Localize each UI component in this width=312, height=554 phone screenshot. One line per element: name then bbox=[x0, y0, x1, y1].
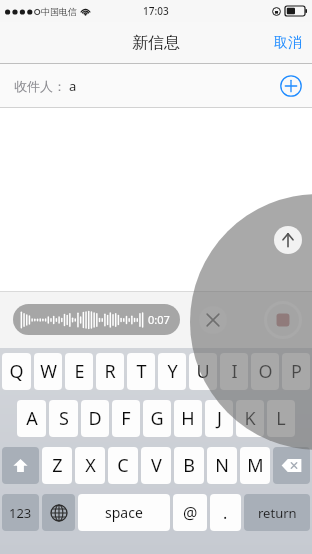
button[interactable]: Z bbox=[42, 447, 72, 484]
button[interactable]: space bbox=[78, 494, 170, 531]
button[interactable]: R bbox=[96, 353, 124, 390]
button[interactable]: Switch keyboard bbox=[42, 494, 75, 531]
button[interactable]: E bbox=[65, 353, 93, 390]
staticText: K bbox=[244, 406, 256, 431]
staticText: B bbox=[183, 453, 195, 478]
staticText: W bbox=[40, 359, 57, 384]
staticText: H bbox=[181, 406, 195, 431]
staticText: Q bbox=[9, 359, 24, 384]
staticText: C bbox=[117, 453, 129, 478]
button[interactable]: 0:07 bbox=[13, 304, 180, 335]
button[interactable]: G bbox=[143, 400, 171, 437]
staticText: @ bbox=[183, 502, 198, 524]
button[interactable]: D bbox=[81, 400, 109, 437]
staticText: X bbox=[85, 453, 96, 478]
staticText: I bbox=[231, 359, 238, 384]
staticText: G bbox=[150, 406, 164, 431]
button[interactable]: Stop recording bbox=[264, 301, 302, 339]
button[interactable]: Send bbox=[274, 226, 302, 254]
button[interactable]: . bbox=[210, 494, 241, 531]
staticText: E bbox=[74, 359, 85, 384]
button[interactable]: Q bbox=[2, 353, 31, 390]
button[interactable]: S bbox=[49, 400, 78, 437]
staticText: . bbox=[223, 502, 228, 524]
staticText: Z bbox=[52, 453, 63, 478]
button[interactable]: U bbox=[189, 353, 217, 390]
button[interactable]: C bbox=[108, 447, 138, 484]
button[interactable]: F bbox=[112, 400, 140, 437]
staticText: 17:03 bbox=[143, 4, 169, 18]
staticText: L bbox=[276, 406, 286, 431]
staticText: return bbox=[258, 504, 297, 522]
staticText: 收件人： bbox=[14, 78, 66, 94]
staticText: V bbox=[151, 453, 162, 478]
staticText: 取消 bbox=[274, 34, 302, 52]
staticText: N bbox=[215, 453, 229, 478]
button[interactable]: O bbox=[251, 353, 279, 390]
button[interactable]: Backspace bbox=[273, 447, 310, 484]
button[interactable]: I bbox=[220, 353, 248, 390]
staticText: 0:07 bbox=[148, 312, 170, 327]
staticText: F bbox=[121, 406, 131, 431]
button[interactable]: B bbox=[174, 447, 204, 484]
button[interactable]: J bbox=[205, 400, 233, 437]
button[interactable]: Y bbox=[158, 353, 186, 390]
button[interactable]: T bbox=[127, 353, 155, 390]
button[interactable]: Cancel recording bbox=[199, 306, 227, 334]
button[interactable]: K bbox=[236, 400, 264, 437]
staticText: a bbox=[69, 77, 77, 95]
staticText: R bbox=[104, 359, 116, 384]
button[interactable]: A bbox=[17, 400, 46, 437]
button[interactable]: Shift bbox=[2, 447, 39, 484]
staticText: S bbox=[59, 406, 69, 431]
staticText: T bbox=[136, 359, 147, 384]
staticText: P bbox=[291, 359, 302, 384]
button[interactable]: Add contact bbox=[280, 75, 302, 97]
button[interactable]: L bbox=[267, 400, 295, 437]
button[interactable]: return bbox=[244, 494, 310, 531]
button[interactable]: H bbox=[174, 400, 202, 437]
button[interactable]: 123 bbox=[2, 494, 39, 531]
staticText: O bbox=[258, 359, 273, 384]
staticText: A bbox=[26, 406, 38, 431]
staticText: Y bbox=[167, 359, 178, 384]
staticText: D bbox=[88, 406, 102, 431]
staticText: U bbox=[196, 359, 210, 384]
staticText: J bbox=[217, 406, 222, 431]
button[interactable]: N bbox=[207, 447, 237, 484]
staticText: 新信息 bbox=[132, 33, 180, 53]
staticText: 中国电信 bbox=[41, 6, 77, 17]
button[interactable]: M bbox=[240, 447, 270, 484]
button[interactable]: W bbox=[34, 353, 62, 390]
button[interactable]: @ bbox=[173, 494, 207, 531]
staticText: space bbox=[105, 503, 143, 522]
staticText: 123 bbox=[9, 504, 32, 522]
button[interactable]: V bbox=[141, 447, 171, 484]
staticText: M bbox=[247, 453, 264, 478]
button[interactable]: P bbox=[282, 353, 310, 390]
button[interactable]: X bbox=[75, 447, 105, 484]
button[interactable]: 取消 bbox=[264, 26, 312, 60]
